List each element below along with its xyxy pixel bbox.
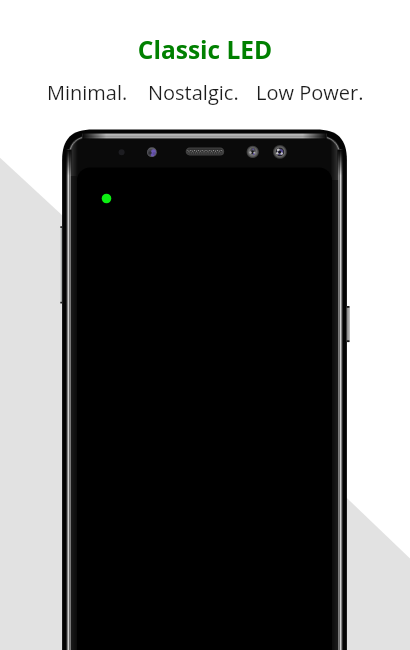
button[interactable]: Low Power. <box>256 79 364 106</box>
button[interactable]: Phone preview showing the LED notificati… <box>62 129 347 650</box>
button[interactable]: Classic LED <box>0 28 410 64</box>
button[interactable]: Nostalgic. <box>148 79 239 106</box>
staticText: Classic LED <box>0 33 410 66</box>
button[interactable]: Minimal. <box>47 79 128 106</box>
